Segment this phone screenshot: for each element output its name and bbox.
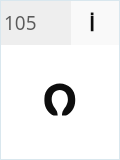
button[interactable]: 105 — [0, 0, 71, 45]
button[interactable]: Info — [71, 0, 120, 45]
staticText: 105 — [4, 10, 37, 36]
